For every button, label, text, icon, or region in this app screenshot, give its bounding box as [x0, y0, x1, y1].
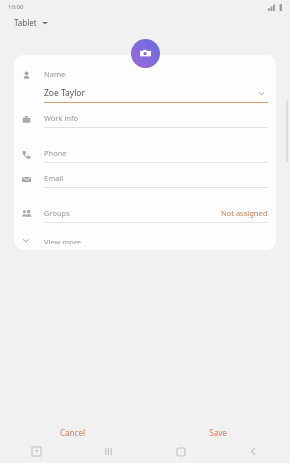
- staticText: Cancel: [60, 427, 85, 438]
- staticText: Name: [44, 69, 66, 79]
- button[interactable]: Email: [14, 173, 276, 188]
- button[interactable]: View more: [14, 231, 276, 250]
- staticText: Phone: [44, 148, 268, 158]
- staticText: Groups: [44, 208, 221, 218]
- staticText: Email: [44, 173, 268, 183]
- button[interactable]: Expand name: [254, 86, 268, 100]
- button[interactable]: Save: [145, 427, 290, 438]
- button[interactable]: Cancel: [0, 427, 145, 438]
- button[interactable]: Back: [217, 440, 290, 463]
- button[interactable]: Tablet: [10, 14, 52, 31]
- staticText: 10:00: [8, 3, 24, 11]
- staticText: Work info: [44, 113, 268, 123]
- button[interactable]: Hide keyboard: [0, 440, 72, 463]
- staticText: Tablet: [14, 17, 37, 28]
- button[interactable]: Change photo: [131, 39, 160, 68]
- button[interactable]: Name: [14, 69, 276, 103]
- staticText: Zoe Taylor: [44, 87, 254, 99]
- staticText: Not assigned: [221, 208, 268, 218]
- button[interactable]: Groups: [14, 208, 276, 223]
- button[interactable]: Home: [144, 440, 217, 463]
- staticText: View more: [44, 237, 82, 244]
- staticText: Save: [209, 427, 227, 438]
- button[interactable]: Work info: [14, 113, 276, 128]
- button[interactable]: Phone: [14, 148, 276, 163]
- button[interactable]: Recents: [72, 440, 144, 463]
